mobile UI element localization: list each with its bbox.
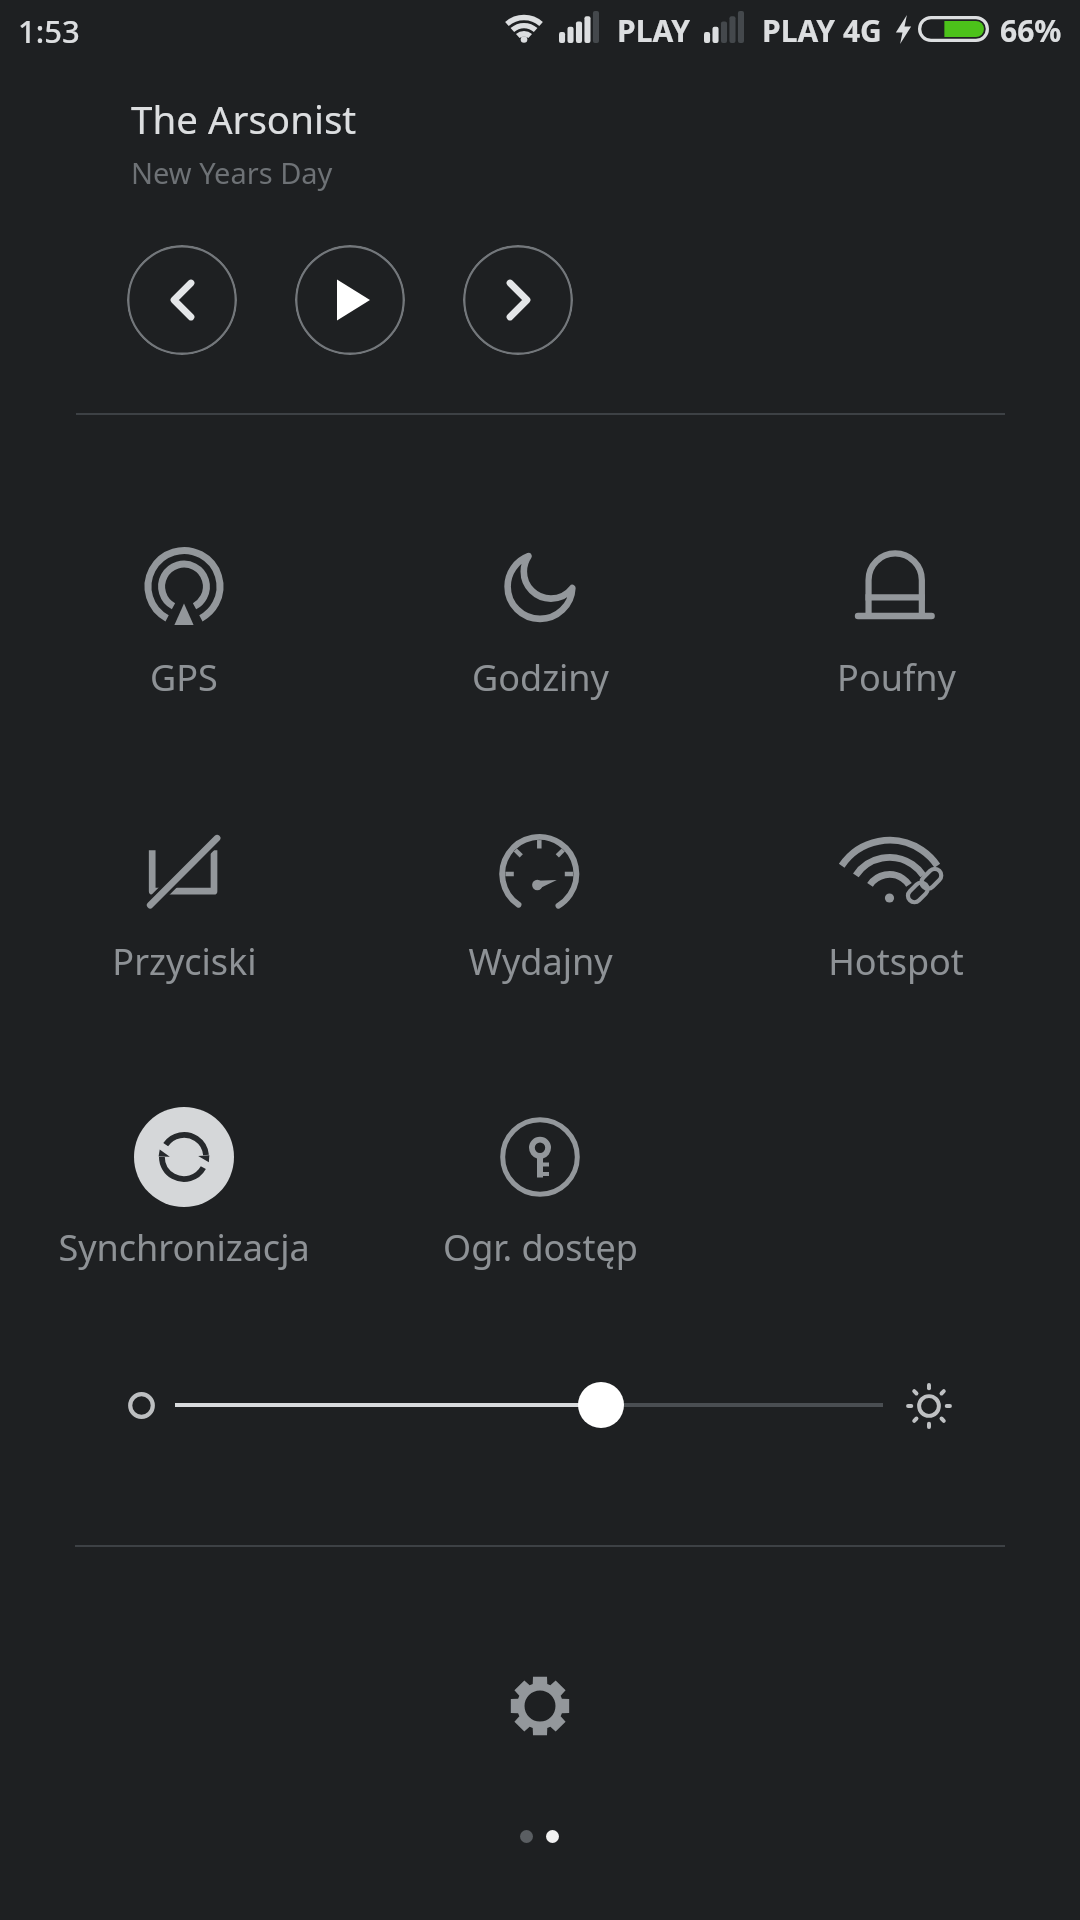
button[interactable]: Play xyxy=(295,245,405,355)
button[interactable]: Ogr. dostęp xyxy=(362,1075,718,1261)
button[interactable]: Poufny xyxy=(718,505,1074,691)
staticText: New Years Day xyxy=(131,153,333,192)
button[interactable]: Settings xyxy=(492,1658,588,1754)
button[interactable]: GPS xyxy=(6,505,362,691)
staticText: PLAY 4G xyxy=(762,10,882,51)
staticText: The Arsonist xyxy=(131,93,357,145)
staticText: GPS xyxy=(150,653,218,702)
staticText: Godziny xyxy=(472,653,609,702)
button[interactable]: Przyciski xyxy=(6,789,362,975)
staticText: PLAY xyxy=(617,10,691,51)
button[interactable]: Hotspot xyxy=(718,789,1074,975)
staticText: Wydajny xyxy=(468,937,613,986)
button[interactable]: Brightness xyxy=(100,1360,980,1454)
button[interactable]: Previous track xyxy=(127,245,237,355)
staticText: Poufny xyxy=(837,653,956,702)
staticText: Hotspot xyxy=(828,937,964,986)
button[interactable]: Wydajny xyxy=(362,789,718,975)
button[interactable]: Synchronizacja xyxy=(6,1075,362,1261)
staticText: Przyciski xyxy=(112,937,257,986)
button[interactable]: Godziny xyxy=(362,505,718,691)
staticText: Ogr. dostęp xyxy=(443,1223,638,1272)
staticText: 1:53 xyxy=(18,10,80,52)
staticText: 66% xyxy=(1000,10,1062,51)
staticText: Synchronizacja xyxy=(58,1223,310,1272)
button[interactable]: Next track xyxy=(463,245,573,355)
